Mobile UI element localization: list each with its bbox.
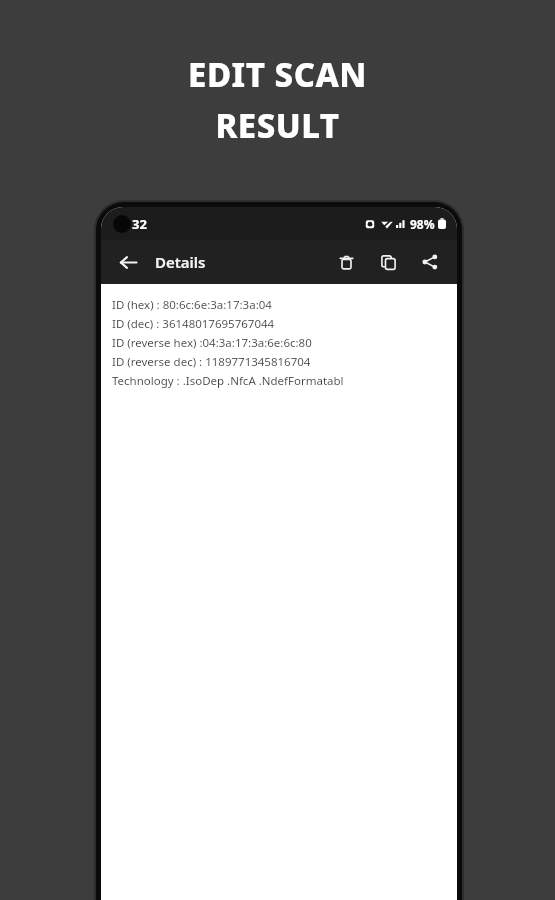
staticText: 98%	[410, 216, 435, 232]
staticText: ID (reverse dec) : 1189771345816704	[112, 354, 311, 370]
staticText: ID (reverse hex) :04:3a:17:3a:6e:6c:80	[112, 335, 312, 351]
staticText: Technology : .IsoDep .NfcA .NdefFormatab…	[112, 373, 344, 389]
button[interactable]: Copy	[371, 245, 405, 279]
button[interactable]: Back	[111, 245, 145, 279]
staticText: ID (dec) : 36148017695767044	[112, 316, 275, 332]
staticText: 32	[132, 215, 147, 233]
staticText: RESULT	[215, 103, 340, 148]
button[interactable]: Share	[413, 245, 447, 279]
staticText: EDIT SCAN	[188, 52, 367, 97]
staticText: ID (hex) : 80:6c:6e:3a:17:3a:04	[112, 297, 272, 313]
staticText: Details	[155, 252, 206, 272]
button[interactable]: Delete	[329, 245, 363, 279]
